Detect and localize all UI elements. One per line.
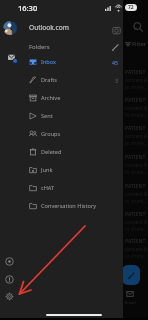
button[interactable]: Help	[5, 275, 14, 284]
staticText: PATIENT	[125, 68, 146, 75]
staticText: to share...	[125, 169, 148, 176]
button[interactable]: Account avatar	[3, 21, 17, 35]
button[interactable]: Mail	[7, 53, 17, 63]
staticText: Folders	[29, 43, 50, 51]
button[interactable]: PATIENT	[125, 124, 148, 147]
staticText: to share...	[125, 112, 148, 119]
button[interactable]: Copilot	[5, 257, 14, 266]
staticText: Junk	[41, 166, 53, 174]
staticText: consent &	[125, 246, 148, 253]
button[interactable]: Compose new mail	[122, 265, 140, 285]
button[interactable]: cHAT	[25, 179, 123, 197]
button[interactable]: Scan QR code	[111, 25, 122, 36]
staticText: PATIENT	[125, 124, 146, 131]
button[interactable]: PATIENT	[125, 153, 148, 176]
staticText: Email	[125, 300, 136, 306]
button[interactable]: Drafts	[25, 71, 123, 89]
staticText: consent &	[125, 77, 148, 84]
button[interactable]: Groups	[25, 125, 123, 143]
staticText: cHAT	[41, 184, 55, 192]
button[interactable]: Edit folders	[110, 42, 121, 53]
staticText: 45	[112, 59, 118, 66]
staticText: 72	[128, 4, 134, 11]
staticText: to share...	[125, 198, 148, 205]
button[interactable]: Mail tab	[123, 290, 137, 306]
button[interactable]: Inbox	[25, 53, 123, 71]
staticText: PATIENT	[125, 210, 146, 217]
button[interactable]: Outlook.com	[29, 23, 69, 32]
staticText: PATIENT	[125, 237, 146, 244]
staticText: 16:30	[18, 3, 38, 13]
button[interactable]: Conversation History	[25, 197, 123, 215]
staticText: to share...	[125, 226, 148, 233]
staticText: PATIENT	[125, 96, 146, 103]
button[interactable]: Archive	[25, 89, 123, 107]
staticText: Inbox	[41, 58, 57, 66]
button[interactable]: PATIENT	[125, 182, 148, 205]
staticText: consent &	[125, 105, 148, 112]
button[interactable]: Filter	[125, 39, 147, 49]
button[interactable]: Deleted	[25, 143, 123, 161]
staticText: Groups	[41, 130, 61, 138]
button[interactable]: PATIENT	[125, 96, 148, 119]
button[interactable]: Search	[132, 21, 144, 33]
button[interactable]: PATIENT	[125, 237, 148, 260]
staticText: Drafts	[41, 76, 58, 84]
staticText: PATIENT	[125, 182, 146, 189]
button[interactable]: Junk	[25, 161, 123, 179]
staticText: Conversation History	[41, 202, 97, 210]
staticText: consent &	[125, 219, 148, 226]
button[interactable]: Sent	[25, 107, 123, 125]
staticText: 3	[115, 77, 118, 84]
staticText: Filter	[132, 40, 147, 48]
button[interactable]: PATIENT	[125, 68, 148, 91]
staticText: to share...	[125, 140, 148, 147]
button[interactable]: PATIENT	[125, 210, 148, 233]
staticText: consent &	[125, 133, 148, 140]
staticText: PATIENT	[125, 153, 146, 160]
staticText: consent &	[125, 191, 148, 198]
staticText: Archive	[41, 94, 61, 102]
staticText: to share...	[125, 253, 148, 260]
staticText: consent &	[125, 162, 148, 169]
staticText: to share...	[125, 84, 148, 91]
staticText: Deleted	[41, 148, 62, 156]
staticText: Sent	[41, 112, 53, 120]
button[interactable]: Settings	[5, 292, 14, 301]
